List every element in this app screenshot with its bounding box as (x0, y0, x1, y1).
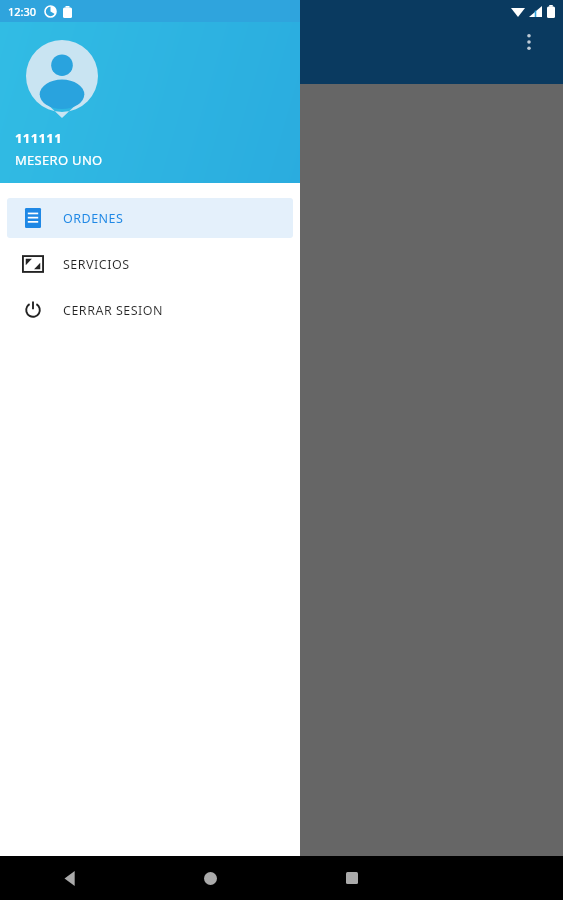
button[interactable]: More options (509, 22, 549, 62)
button[interactable]: CERRAR SESION (7, 290, 293, 330)
button[interactable]: SERVICIOS (7, 244, 293, 284)
staticText: MESERO UNO (15, 151, 103, 169)
button[interactable]: Home (140, 856, 281, 900)
staticText: CERRAR SESION (63, 302, 164, 319)
staticText: ORDENES (63, 210, 124, 227)
button[interactable]: ORDENES (7, 198, 293, 238)
button[interactable]: Recent apps (281, 856, 422, 900)
staticText: 12:30 (8, 4, 37, 19)
button[interactable]: Back (0, 856, 140, 900)
staticText: 111111 (15, 129, 63, 147)
staticText: SERVICIOS (63, 256, 130, 273)
